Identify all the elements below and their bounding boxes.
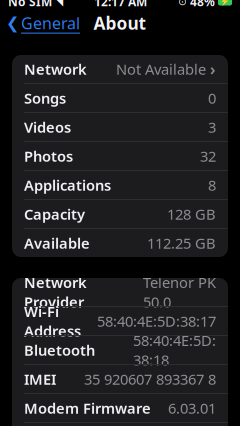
staticText: 8 bbox=[208, 175, 216, 195]
button[interactable]: Videos bbox=[12, 113, 228, 141]
staticText: 6.03.01 bbox=[168, 398, 216, 418]
staticText: 12:17 AM bbox=[94, 0, 147, 9]
staticText: ❮ bbox=[6, 14, 19, 32]
staticText: Available bbox=[24, 233, 90, 253]
staticText: Photos bbox=[24, 146, 73, 166]
staticText: ⚡ bbox=[220, 0, 230, 6]
staticText: ⊙ bbox=[178, 0, 187, 7]
staticText: 48% bbox=[190, 0, 215, 9]
staticText: Bluetooth bbox=[24, 340, 95, 360]
staticText: Songs bbox=[24, 88, 66, 108]
staticText: Capacity bbox=[24, 204, 85, 224]
staticText: Not Available bbox=[116, 59, 206, 79]
button[interactable]: Capacity bbox=[12, 200, 228, 228]
staticText: Network Provider bbox=[24, 272, 87, 311]
staticText: Modem Firmware bbox=[24, 398, 151, 418]
staticText: 112.25 GB bbox=[147, 233, 216, 253]
staticText: Telenor PK 50.0 bbox=[143, 272, 216, 311]
staticText: 58:40:4E:5D:38:18 bbox=[133, 330, 216, 369]
staticText: 58:40:4E:5D:38:17 bbox=[97, 311, 216, 331]
staticText: No SIM bbox=[8, 0, 52, 9]
staticText: 0 bbox=[208, 88, 216, 108]
button[interactable]: Network Provider bbox=[12, 278, 228, 306]
button[interactable]: IMEI bbox=[12, 365, 228, 393]
staticText: 3 bbox=[208, 117, 216, 137]
button[interactable]: Network bbox=[12, 55, 228, 83]
button[interactable]: Wi-Fi Address bbox=[12, 307, 228, 335]
button[interactable]: Modem Firmware bbox=[12, 394, 228, 422]
button[interactable]: Bluetooth bbox=[12, 336, 228, 364]
staticText: General bbox=[21, 12, 80, 34]
staticText: Applications bbox=[24, 175, 111, 195]
staticText: › bbox=[210, 58, 216, 80]
staticText: IMEI bbox=[24, 369, 56, 389]
staticText: ◥ bbox=[55, 0, 63, 7]
staticText: Videos bbox=[24, 117, 71, 137]
button[interactable]: Available bbox=[12, 229, 228, 257]
staticText: 128 GB bbox=[167, 204, 216, 224]
staticText: About bbox=[93, 11, 146, 34]
staticText: Wi-Fi Address bbox=[24, 301, 81, 340]
button[interactable]: Applications bbox=[12, 171, 228, 199]
staticText: 35 920607 893367 8 bbox=[84, 369, 216, 389]
staticText: 32 bbox=[200, 146, 216, 166]
staticText: Network bbox=[24, 59, 87, 79]
button[interactable]: Photos bbox=[12, 142, 228, 170]
button[interactable]: Songs bbox=[12, 84, 228, 112]
button[interactable]: ❮ bbox=[0, 11, 86, 35]
